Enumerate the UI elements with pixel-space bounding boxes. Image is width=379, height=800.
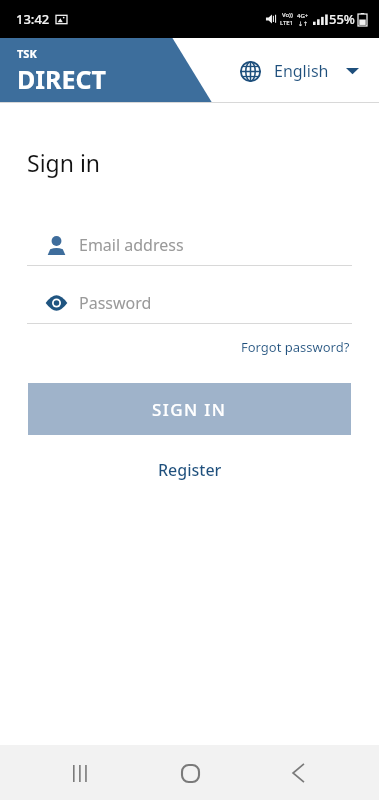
staticText: Vo)) [282, 11, 293, 19]
staticText: Email address [79, 234, 184, 256]
staticText: LTE1 [280, 19, 294, 27]
button[interactable]: Email address [27, 225, 352, 266]
staticText: English [274, 60, 329, 82]
button[interactable]: Recent apps [54, 746, 108, 800]
staticText: SIGN IN [152, 398, 227, 421]
staticText: 13:42 [16, 10, 50, 28]
staticText: DIRECT [17, 62, 106, 96]
button[interactable]: Register [148, 454, 232, 486]
staticText: 4G+ [297, 12, 309, 20]
button[interactable]: Back [271, 746, 325, 800]
staticText: TSK [17, 46, 37, 61]
button[interactable]: Select language [234, 54, 365, 88]
button[interactable]: Show password [27, 283, 352, 324]
other: Show password [27, 283, 79, 323]
button[interactable]: Home [163, 746, 217, 800]
staticText: Register [158, 459, 222, 481]
other: Select language [240, 61, 261, 82]
staticText: ↓↑ [298, 20, 309, 27]
staticText: Forgot password? [241, 338, 350, 356]
staticText: 55% [329, 10, 355, 28]
button[interactable]: Forgot password? [239, 334, 352, 360]
other: Email address [27, 225, 79, 265]
staticText: Sign in [27, 147, 101, 178]
staticText: Password [79, 292, 152, 314]
button[interactable]: SIGN IN [28, 383, 351, 435]
